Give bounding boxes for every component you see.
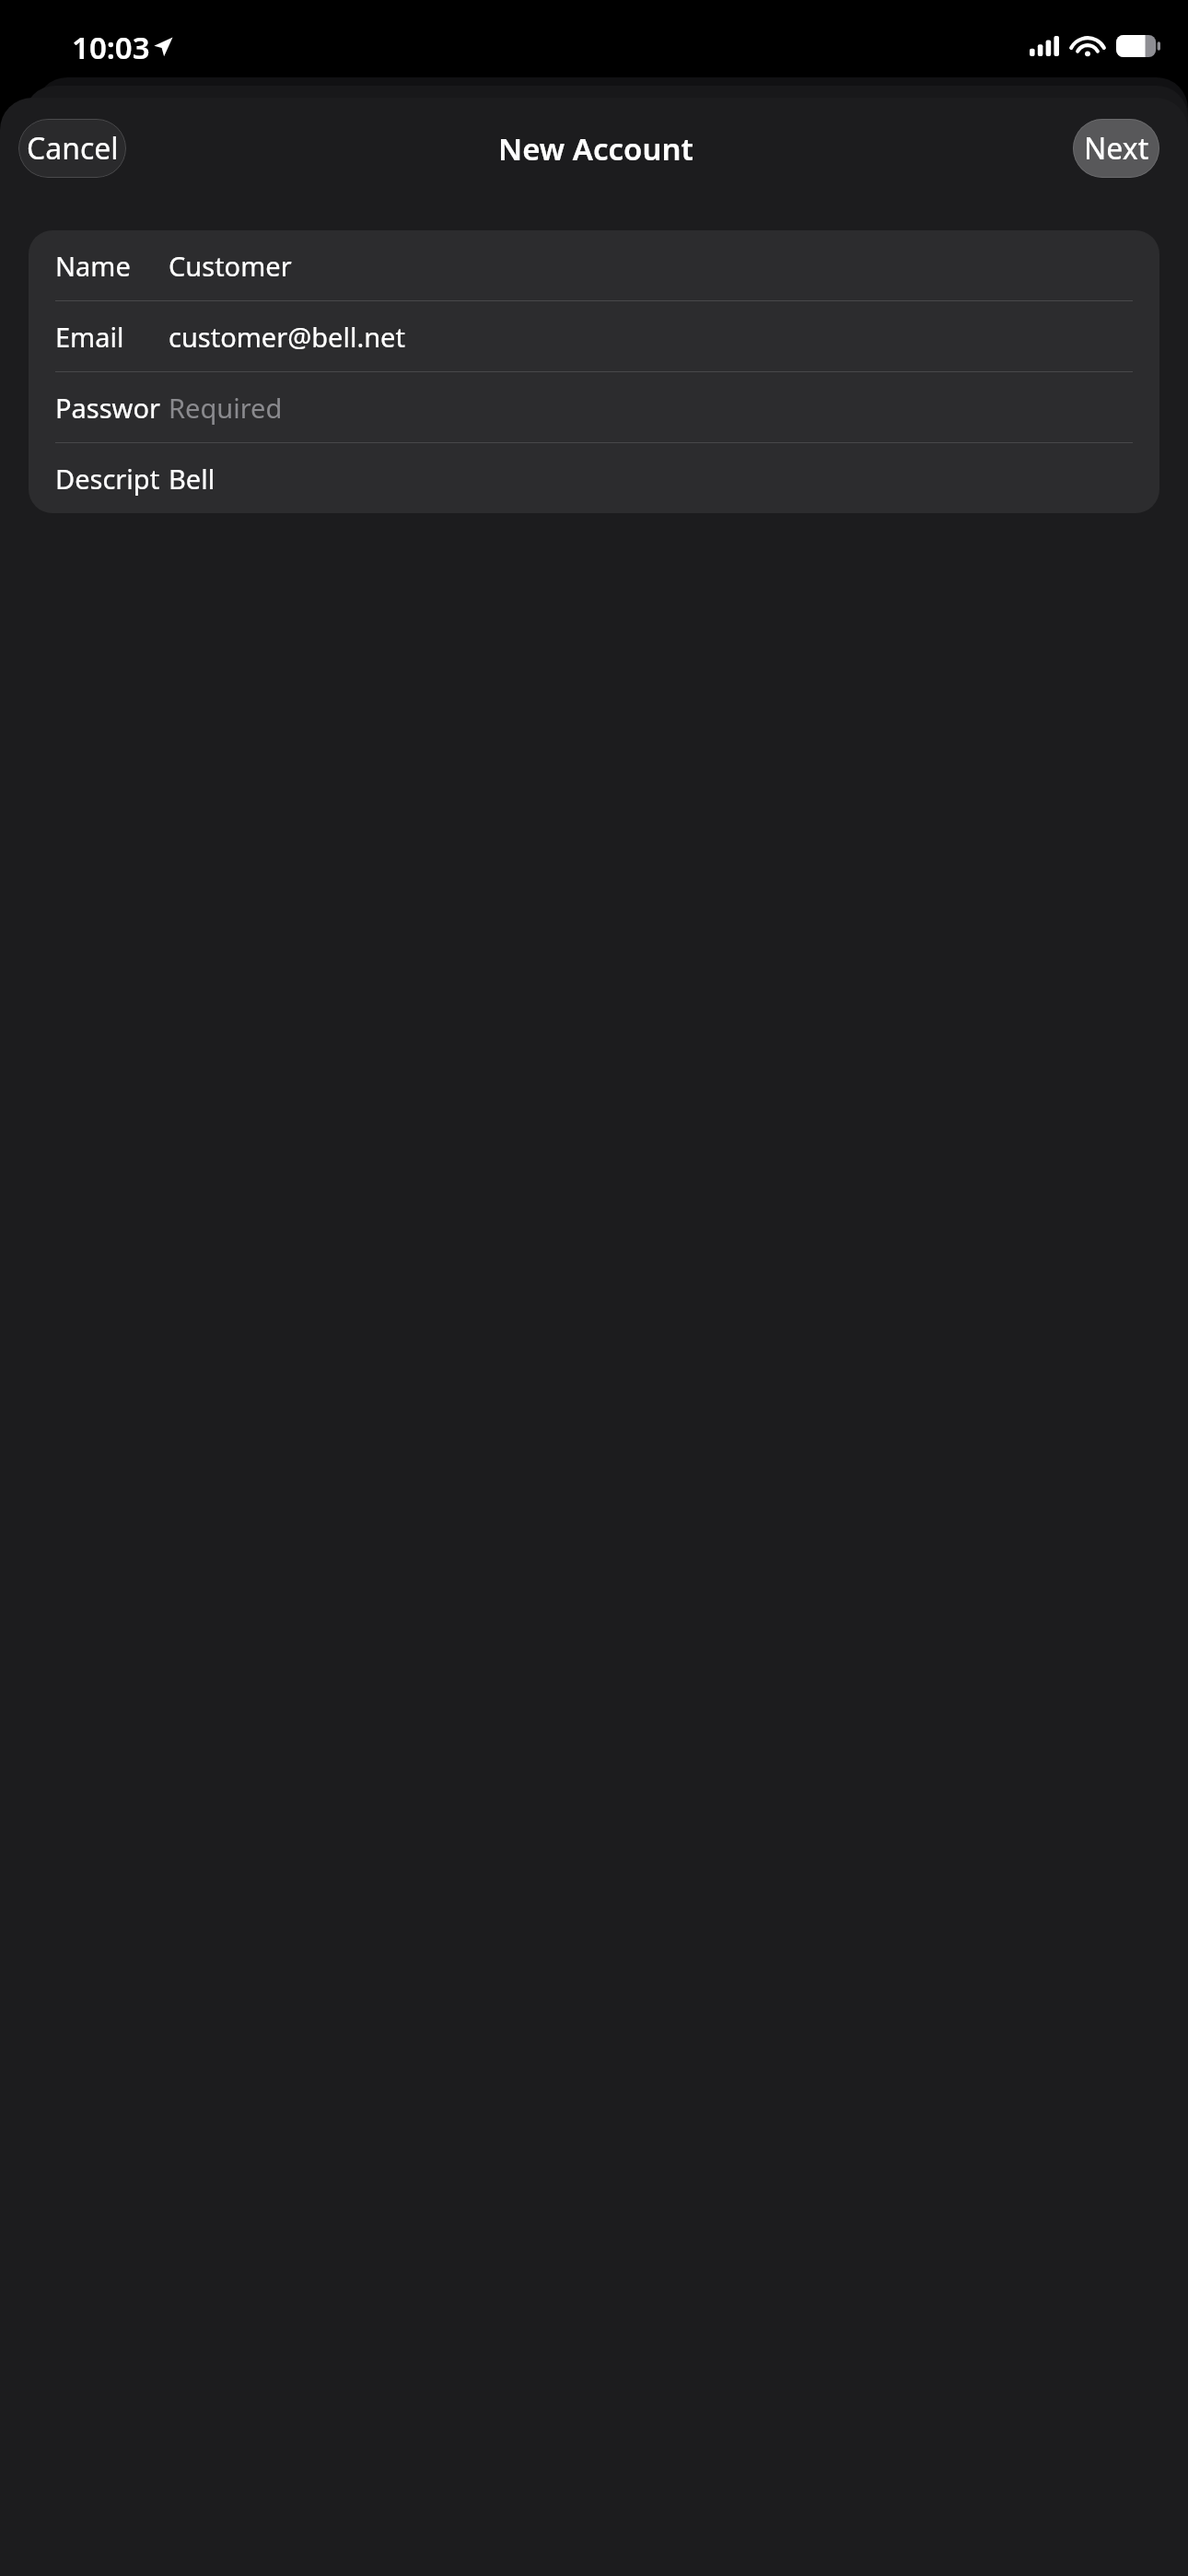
staticText: Password <box>55 390 161 426</box>
staticText: Cancel <box>27 128 119 169</box>
staticText: Customer <box>169 248 292 284</box>
staticText: Bell <box>169 461 215 497</box>
button[interactable]: Email <box>29 301 1159 371</box>
staticText: Name <box>55 248 131 284</box>
staticText: Next <box>1084 128 1149 169</box>
button[interactable]: Cancel <box>18 119 126 178</box>
staticText: customer@bell.net <box>169 319 405 355</box>
staticText: New Account <box>498 128 693 170</box>
staticText: 10:03 <box>72 27 150 68</box>
button[interactable]: Name <box>29 230 1159 300</box>
button[interactable]: Password <box>29 372 1159 442</box>
staticText: Required <box>169 390 283 426</box>
staticText: Description <box>55 461 161 497</box>
button[interactable]: Description <box>29 443 1159 513</box>
staticText: Email <box>55 319 124 355</box>
button[interactable]: Next <box>1073 119 1159 178</box>
